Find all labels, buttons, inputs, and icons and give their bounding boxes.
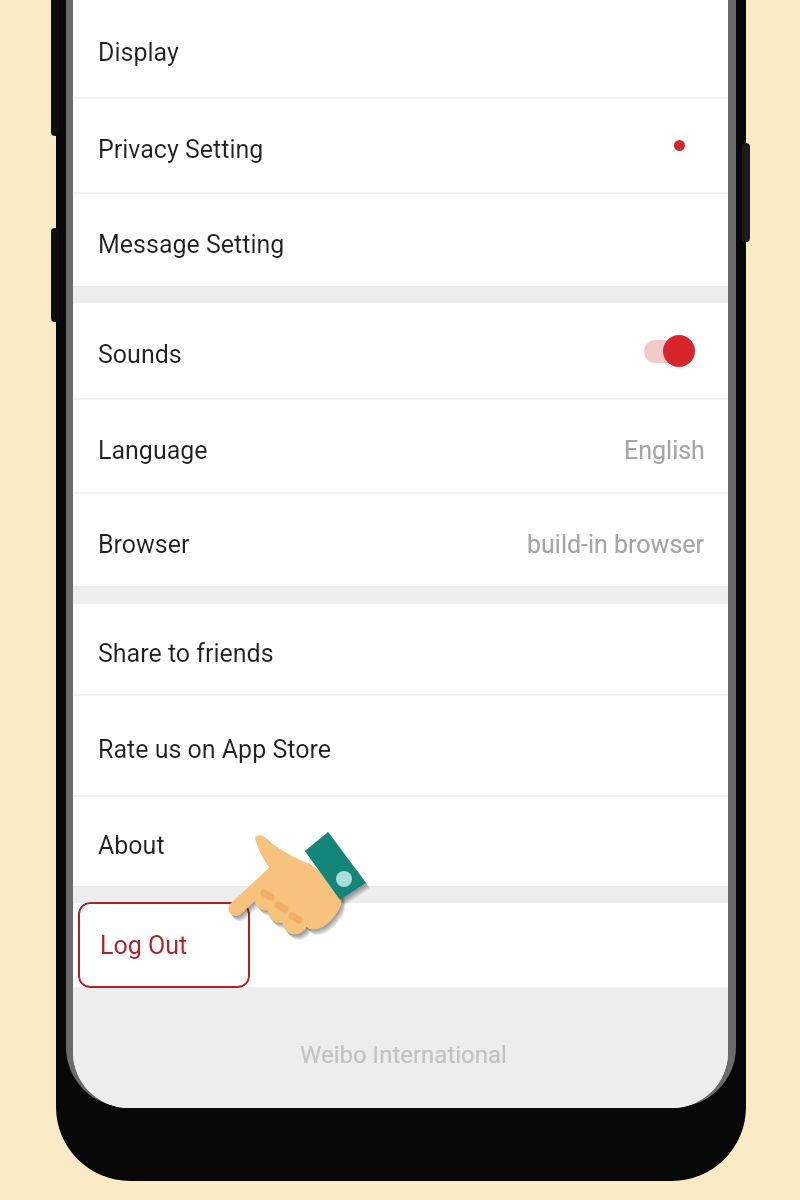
button[interactable]: About xyxy=(73,797,728,886)
other: Tap Log Out xyxy=(0,0,800,1200)
button[interactable]: Share to friends xyxy=(73,604,728,694)
staticText: build-in browser xyxy=(527,530,705,559)
staticText: About xyxy=(98,831,165,860)
staticText: Rate us on App Store xyxy=(98,735,331,764)
staticText: Display xyxy=(98,38,179,67)
staticText: Share to friends xyxy=(98,639,274,668)
staticText: Browser xyxy=(98,530,190,559)
button[interactable]: Rate us on App Store xyxy=(73,696,728,795)
button[interactable]: Sounds xyxy=(73,303,728,398)
staticText: Language xyxy=(98,436,208,465)
staticText: English xyxy=(624,436,705,465)
button[interactable]: Privacy Setting xyxy=(73,99,728,192)
button[interactable]: Browser xyxy=(73,494,728,586)
staticText: Sounds xyxy=(98,340,182,369)
staticText: Privacy Setting xyxy=(98,135,264,164)
staticText: Weibo International xyxy=(300,1041,507,1069)
button[interactable]: Log Out xyxy=(78,902,250,988)
staticText: Log Out xyxy=(100,931,188,960)
button[interactable]: Display xyxy=(73,0,728,97)
button[interactable]: Language xyxy=(73,400,728,492)
button[interactable]: Message Setting xyxy=(73,194,728,286)
staticText: Message Setting xyxy=(98,230,285,259)
